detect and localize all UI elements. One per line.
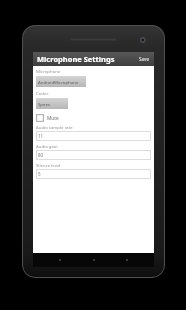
staticText: Speex [38,101,51,107]
button[interactable]: Home [87,253,101,267]
button[interactable]: 80 [36,150,151,160]
button[interactable]: 5 [36,169,151,179]
button[interactable]: Speex [36,98,68,109]
staticText: 11 [38,133,44,139]
button[interactable]: Recents [120,253,134,267]
button[interactable]: Save [137,55,152,63]
staticText: Mute [47,115,59,122]
staticText: Microphone Settings [37,54,115,64]
button[interactable]: AndroidMicrophone [36,76,86,87]
staticText: Save [139,56,150,62]
button[interactable]: 11 [36,131,151,141]
staticText: Codec [36,90,49,96]
staticText: Audio sample rate [36,124,73,130]
staticText: Audio gain [36,143,58,149]
staticText: 5 [38,171,41,177]
staticText: Silence level [36,162,61,168]
button[interactable]: Mute [36,113,59,123]
button[interactable]: Back [53,253,67,267]
staticText: AndroidMicrophone [38,79,79,85]
staticText: Microphone [36,68,61,74]
staticText: 80 [38,152,44,158]
